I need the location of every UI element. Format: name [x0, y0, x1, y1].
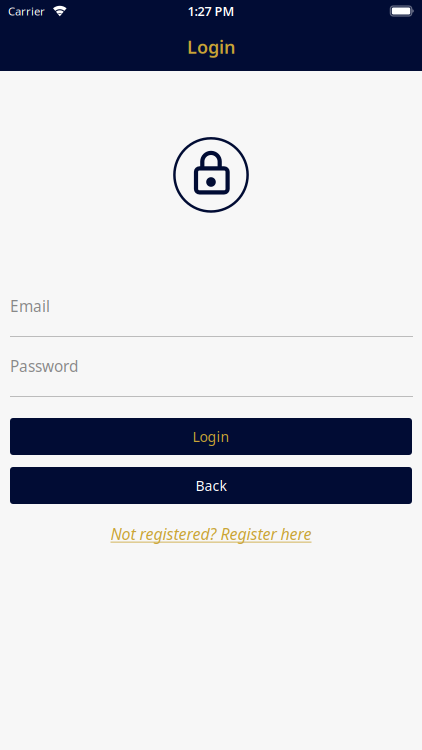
button[interactable]: Back — [10, 467, 412, 504]
staticText: Login — [187, 34, 235, 59]
staticText: Not registered? Register here — [110, 523, 311, 545]
staticText: Login — [192, 427, 229, 446]
button[interactable]: Login — [10, 418, 412, 455]
staticText: Back — [195, 476, 226, 495]
staticText: 1:27 PM — [187, 2, 234, 20]
staticText: Password — [10, 356, 78, 376]
staticText: Carrier — [8, 3, 45, 19]
staticText: Email — [10, 296, 50, 316]
button[interactable]: Not registered? Register here — [110, 523, 311, 545]
